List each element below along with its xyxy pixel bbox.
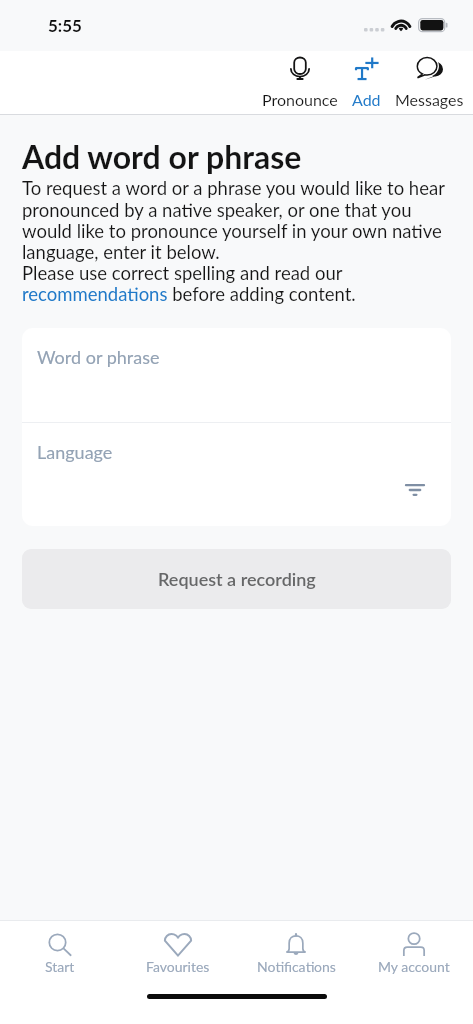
button[interactable]: Notifications (237, 921, 355, 983)
staticText: Pronounce (262, 90, 338, 109)
staticText: Notifications (257, 958, 336, 975)
button[interactable]: Start (0, 921, 119, 983)
staticText: Language (37, 441, 113, 463)
button[interactable]: Language (22, 423, 451, 526)
staticText: To request a word or a phrase you would … (22, 177, 455, 305)
staticText: Messages (395, 90, 464, 109)
button[interactable]: Add (345, 57, 388, 114)
staticText: My account (378, 958, 450, 975)
button[interactable]: Request a recording (22, 549, 451, 609)
button[interactable]: Word or phrase (22, 328, 451, 422)
staticText: Add (352, 90, 381, 109)
staticText: Favourites (146, 958, 210, 975)
staticText: Word or phrase (37, 346, 160, 368)
staticText: Start (45, 958, 75, 975)
button[interactable]: Choose language (399, 474, 431, 506)
button[interactable]: Pronounce (255, 57, 345, 114)
staticText: 5:55 (48, 15, 82, 35)
staticText: Request a recording (158, 568, 316, 590)
button[interactable]: My account (355, 921, 473, 983)
button[interactable]: Messages (388, 57, 471, 114)
staticText: Add word or phrase (22, 137, 302, 175)
button[interactable]: Favourites (119, 921, 237, 983)
